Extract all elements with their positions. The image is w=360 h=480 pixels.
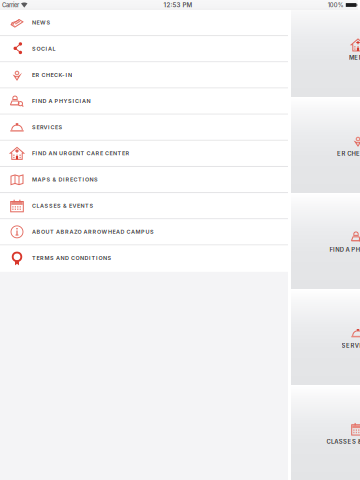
button[interactable]: TERMS AND CONDITIONS: [0, 245, 288, 272]
staticText: ER CHECK-IN: [337, 150, 360, 157]
button[interactable]: ER CHECK-IN: [0, 62, 288, 88]
staticText: FIND AN URGENT CARE CENTER: [32, 150, 129, 157]
staticText: Carrier: [2, 1, 19, 9]
button[interactable]: ABOUT ABRAZO ARROWHEAD CAMPUS: [0, 219, 288, 245]
button[interactable]: MENU: [291, 1, 360, 97]
button[interactable]: CLASSES & EVENTS: [0, 193, 288, 219]
button[interactable]: ER CHECK-IN: [291, 97, 360, 193]
staticText: FIND A PHYSICIAN: [32, 98, 90, 104]
staticText: FIND A PHYSICIAN: [329, 246, 360, 253]
staticText: SERVICES: [32, 124, 62, 130]
staticText: TERMS AND CONDITIONS: [32, 255, 111, 261]
staticText: ABOUT ABRAZO ARROWHEAD CAMPUS: [32, 229, 154, 235]
staticText: CLASSES & EVENTS: [32, 202, 93, 209]
button[interactable]: SOCIAL: [0, 36, 288, 62]
button[interactable]: FIND A PHYSICIAN: [0, 88, 288, 115]
staticText: MAPS & DIRECTIONS: [32, 176, 98, 183]
staticText: 100%: [328, 1, 344, 9]
button[interactable]: NEWS: [0, 10, 288, 36]
staticText: CLASSES & EVENTS: [326, 438, 360, 445]
button[interactable]: FIND A PHYSICIAN: [291, 193, 360, 289]
button[interactable]: SERVICES: [0, 115, 288, 141]
staticText: SOCIAL: [32, 45, 55, 52]
staticText: 12:53 PM: [163, 1, 192, 9]
staticText: NEWS: [32, 19, 50, 26]
staticText: SERVICES: [342, 342, 360, 349]
staticText: ER CHECK-IN: [32, 72, 72, 78]
button[interactable]: SERVICES: [291, 289, 360, 385]
staticText: MENU: [349, 54, 360, 61]
button[interactable]: CLASSES & EVENTS: [291, 385, 360, 480]
button[interactable]: FIND AN URGENT CARE CENTER: [0, 141, 288, 167]
button[interactable]: MAPS & DIRECTIONS: [0, 167, 288, 193]
